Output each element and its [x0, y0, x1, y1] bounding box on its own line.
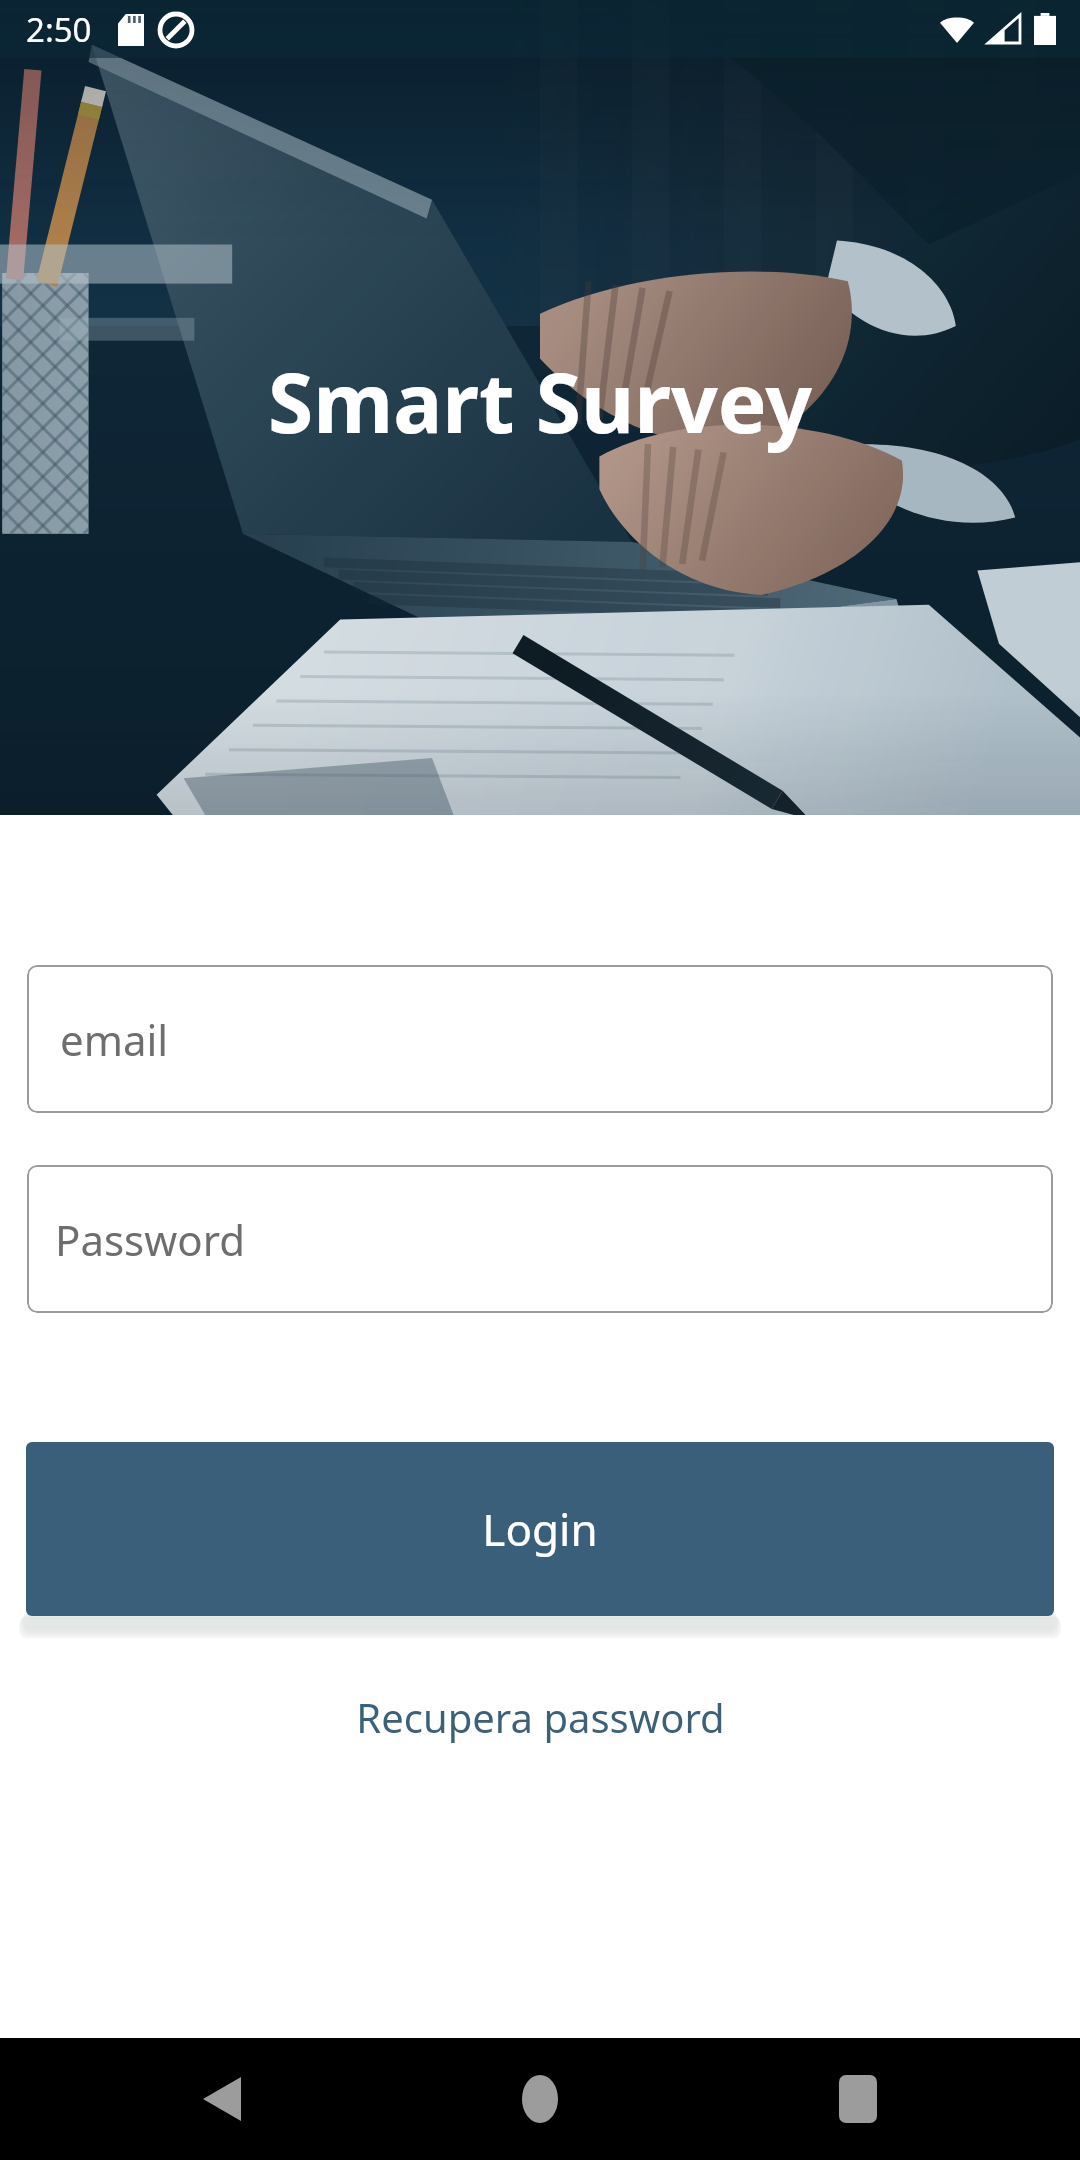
button[interactable]: email — [27, 965, 1053, 1113]
staticText: Login — [482, 1499, 598, 1559]
button[interactable]: Back — [184, 2061, 260, 2137]
button[interactable]: Recent apps — [820, 2061, 896, 2137]
staticText: Password — [55, 1211, 245, 1268]
button[interactable]: Password — [27, 1165, 1053, 1313]
staticText: 2:50 — [26, 7, 92, 52]
button[interactable]: Login — [26, 1442, 1054, 1616]
button[interactable]: Recupera password — [0, 1690, 1080, 1744]
button[interactable]: Home — [502, 2061, 578, 2137]
staticText: Smart Survey — [268, 345, 812, 457]
staticText: Recupera password — [356, 1690, 725, 1744]
staticText: email — [60, 1011, 169, 1068]
